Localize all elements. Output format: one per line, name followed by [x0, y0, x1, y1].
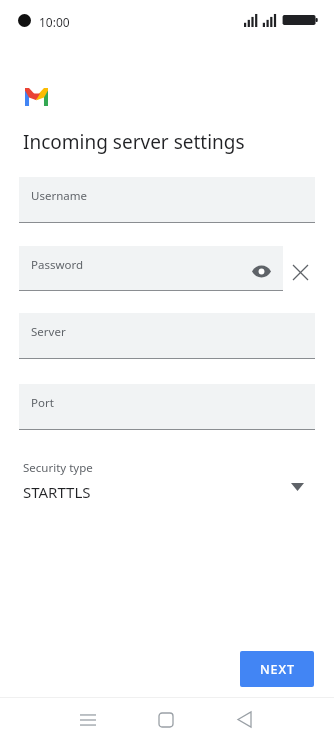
button[interactable]: Security type: [19, 456, 315, 506]
button[interactable]: Password: [19, 246, 283, 291]
staticText: NEXT: [260, 661, 295, 678]
button[interactable]: Recent apps: [62, 697, 114, 742]
button[interactable]: Clear password: [287, 259, 314, 286]
staticText: Port: [31, 395, 54, 411]
button[interactable]: Back: [218, 697, 270, 742]
staticText: STARTTLS: [23, 482, 91, 502]
staticText: Incoming server settings: [23, 129, 245, 155]
button[interactable]: NEXT: [240, 651, 314, 687]
staticText: Username: [31, 188, 87, 204]
button[interactable]: Port: [19, 384, 315, 430]
button[interactable]: Server: [19, 313, 315, 359]
button[interactable]: Username: [19, 177, 315, 223]
staticText: Server: [31, 324, 66, 340]
staticText: Security type: [23, 460, 93, 476]
staticText: Password: [31, 257, 84, 273]
button[interactable]: Show password: [247, 257, 275, 285]
staticText: 10:00: [39, 14, 70, 30]
button[interactable]: Home: [140, 697, 192, 742]
